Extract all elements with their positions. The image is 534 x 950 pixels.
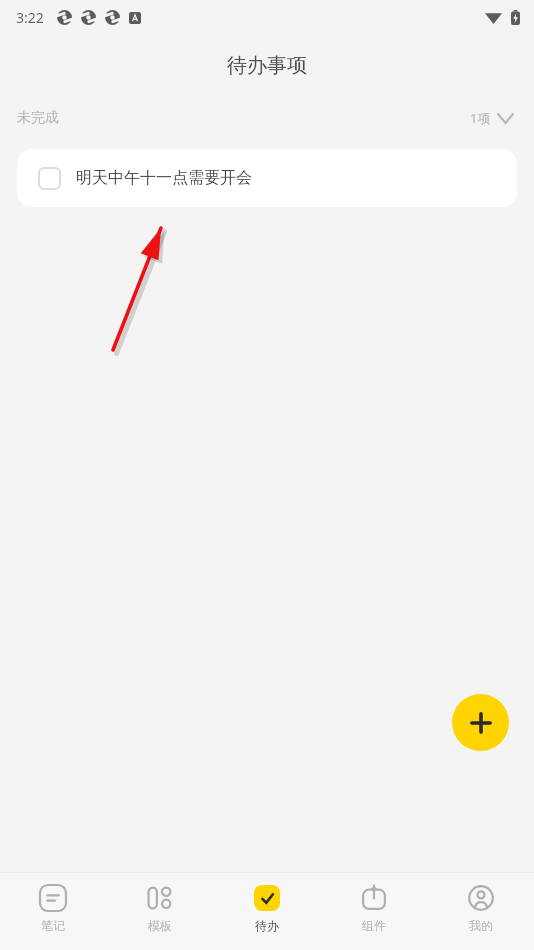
staticText: 1项 (470, 109, 491, 127)
button[interactable]: Toggle task complete (33, 162, 65, 194)
staticText: 待办 (255, 918, 279, 933)
staticText: 我的 (469, 918, 493, 933)
staticText: 笔记 (41, 918, 65, 933)
button[interactable]: Toggle task complete (17, 149, 517, 207)
button[interactable]: 待办 (213, 873, 320, 950)
staticText: 组件 (362, 918, 386, 933)
button[interactable]: 组件 (320, 873, 427, 950)
staticText: 待办事项 (227, 53, 307, 78)
staticText: 3:22 (16, 8, 44, 27)
staticText: 明天中午十一点需要开会 (76, 168, 252, 188)
button[interactable]: 我的 (427, 873, 534, 950)
button[interactable]: Add task (452, 694, 509, 751)
button[interactable]: 模板 (106, 873, 213, 950)
button[interactable]: 笔记 (0, 873, 106, 950)
staticText: 模板 (148, 918, 172, 933)
staticText: 未完成 (17, 109, 59, 127)
button[interactable]: 1项 (466, 105, 517, 131)
